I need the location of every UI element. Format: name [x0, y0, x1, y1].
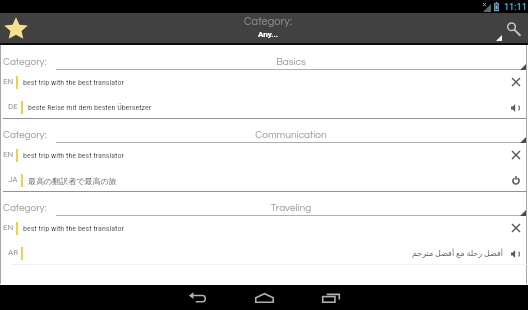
staticText: Category:	[3, 130, 47, 140]
staticText: EN	[3, 150, 14, 159]
button[interactable]: Recent apps	[307, 285, 354, 310]
button[interactable]: EN	[1, 221, 528, 239]
other: Speak	[511, 250, 520, 258]
staticText: أفضل رحلة مع أفضل مترجم	[28, 249, 503, 258]
staticText: AR	[8, 248, 19, 257]
button[interactable]: Category:	[208, 13, 328, 43]
staticText: best trip with the best translator	[23, 78, 508, 87]
button[interactable]: Category:	[1, 191, 528, 218]
staticText: JA	[8, 175, 18, 184]
staticText: Basics	[56, 57, 526, 67]
staticText: DE	[8, 102, 18, 111]
staticText: EN	[3, 223, 14, 232]
other: Speak	[511, 104, 520, 112]
staticText: Any...	[258, 30, 279, 39]
staticText: Category:	[3, 57, 47, 67]
staticText: beste Reise mit dem besten Übersetzer	[28, 103, 508, 112]
staticText: best trip with the best translator	[23, 224, 508, 233]
staticText: EN	[3, 77, 14, 86]
button[interactable]: Favourites	[2, 15, 29, 42]
staticText: Communication	[56, 130, 526, 140]
button[interactable]: EN	[1, 148, 528, 166]
button[interactable]: Back	[174, 284, 221, 309]
staticText: Traveling	[56, 203, 526, 213]
staticText: best trip with the best translator	[23, 151, 508, 160]
staticText: 最高の翻訳者で最高の旅	[28, 176, 508, 186]
button[interactable]: DE	[1, 100, 528, 118]
other: Remove	[512, 151, 520, 159]
button[interactable]: JA	[1, 173, 528, 191]
button[interactable]: Category:	[1, 45, 528, 72]
staticText: 11:11	[504, 2, 527, 13]
button[interactable]: Search	[498, 13, 528, 43]
other: Standby	[512, 176, 520, 184]
other: Remove	[512, 78, 520, 86]
other: Remove	[512, 224, 520, 232]
button[interactable]: EN	[1, 75, 528, 93]
staticText: Category:	[244, 16, 292, 27]
button[interactable]: Home	[240, 285, 288, 310]
button[interactable]: AR	[1, 246, 528, 264]
button[interactable]: Category:	[1, 118, 528, 145]
staticText: Category:	[3, 203, 47, 213]
